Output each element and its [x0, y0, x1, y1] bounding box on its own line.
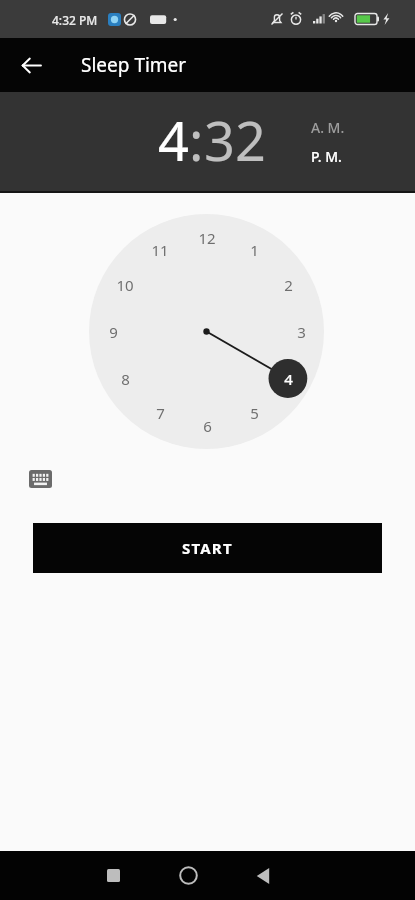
- button[interactable]: 32: [204, 103, 266, 177]
- staticText: START: [182, 538, 233, 558]
- staticText: P. M.: [311, 147, 342, 166]
- button[interactable]: A. M.: [311, 118, 345, 137]
- button[interactable]: 4: [158, 103, 189, 177]
- staticText: 6: [203, 416, 212, 436]
- staticText: 4:32 PM: [52, 12, 98, 28]
- staticText: 1: [250, 240, 259, 260]
- button[interactable]: Clock dial: [89, 214, 324, 449]
- staticText: :: [189, 103, 204, 177]
- staticText: A. M.: [311, 118, 345, 137]
- button[interactable]: START: [33, 523, 382, 573]
- button[interactable]: Home: [158, 851, 218, 900]
- staticText: 12: [198, 228, 216, 248]
- staticText: Sleep Timer: [81, 52, 187, 78]
- button[interactable]: Back: [233, 851, 293, 900]
- staticText: 2: [284, 275, 293, 295]
- staticText: 4: [284, 369, 293, 389]
- staticText: 7: [156, 403, 165, 423]
- staticText: 10: [116, 275, 134, 295]
- button[interactable]: P. M.: [311, 147, 342, 166]
- staticText: 5: [250, 403, 259, 423]
- button[interactable]: Back: [9, 43, 53, 87]
- staticText: 9: [109, 322, 118, 342]
- button[interactable]: Switch to text input: [26, 466, 54, 492]
- staticText: 11: [151, 240, 169, 260]
- staticText: 3: [297, 322, 306, 342]
- button[interactable]: Recent apps: [83, 851, 143, 900]
- staticText: 8: [121, 369, 130, 389]
